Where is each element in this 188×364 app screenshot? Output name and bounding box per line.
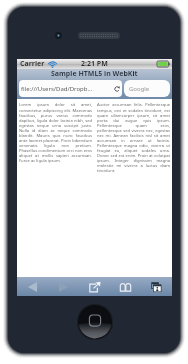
button[interactable]: Bookmarks <box>110 277 141 296</box>
button[interactable]: Google <box>124 80 170 97</box>
button[interactable]: Forward <box>48 277 79 296</box>
staticText: Auctor accumsan felis. Pellentesque temp… <box>97 102 170 173</box>
button[interactable]: Share <box>79 277 110 296</box>
staticText: Lorem ipsum dolor sit amet, consectetur … <box>19 102 92 163</box>
staticText: file:///Users/Dad/Dropb... <box>21 85 93 93</box>
button[interactable]: Tabs <box>141 277 172 296</box>
staticText: 2:21 PM <box>81 59 108 69</box>
button[interactable]: Back <box>17 277 48 296</box>
staticText: Carrier <box>20 59 45 69</box>
staticText: Google <box>129 85 150 93</box>
button[interactable]: file:///Users/Dad/Dropb... <box>19 80 122 97</box>
staticText: Sample HTML5 in WebKit <box>51 69 138 78</box>
